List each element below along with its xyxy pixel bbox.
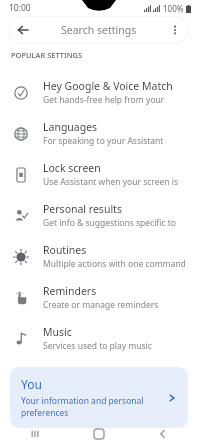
staticText: Get hands-free help from your Assistant (43, 94, 188, 106)
button[interactable]: Reminders (0, 277, 198, 318)
staticText: Languages (43, 120, 98, 134)
button[interactable]: Lock screen (0, 154, 198, 195)
staticText: POPULAR SETTINGS (11, 50, 83, 60)
button[interactable]: Recents (22, 428, 48, 440)
staticText: Your information and personal (21, 395, 144, 407)
staticText: Get info & suggestions specific to you (43, 217, 188, 229)
staticText: 100% (163, 3, 184, 14)
button[interactable]: Hey Google & Voice Match (0, 72, 198, 113)
staticText: Routines (43, 243, 87, 257)
staticText: Music (43, 325, 72, 339)
button[interactable]: More options (161, 16, 189, 44)
button[interactable]: Back (150, 428, 176, 440)
button[interactable]: Back (9, 16, 37, 44)
staticText: Use Assistant when your screen is locked (43, 176, 188, 188)
staticText: preferences (21, 407, 69, 419)
staticText: Services used to play music (43, 340, 152, 352)
staticText: Reminders (43, 284, 97, 298)
staticText: Personal results (43, 202, 122, 216)
button[interactable]: Routines (0, 236, 198, 277)
button[interactable]: Personal results (0, 195, 198, 236)
staticText: 10:00 (9, 2, 31, 14)
staticText: Multiple actions with one command (43, 258, 186, 270)
staticText: Lock screen (43, 161, 101, 175)
button[interactable]: Languages (0, 113, 198, 154)
staticText: You (21, 376, 42, 392)
button[interactable]: Home (86, 428, 112, 440)
staticText: Hey Google & Voice Match (43, 79, 173, 93)
button[interactable]: Back (9, 16, 189, 44)
staticText: Search settings (61, 23, 137, 37)
button[interactable]: You (10, 367, 188, 428)
button[interactable]: Music (0, 318, 198, 359)
staticText: For speaking to your Assistant (43, 135, 164, 147)
staticText: Create or manage reminders (43, 299, 159, 311)
